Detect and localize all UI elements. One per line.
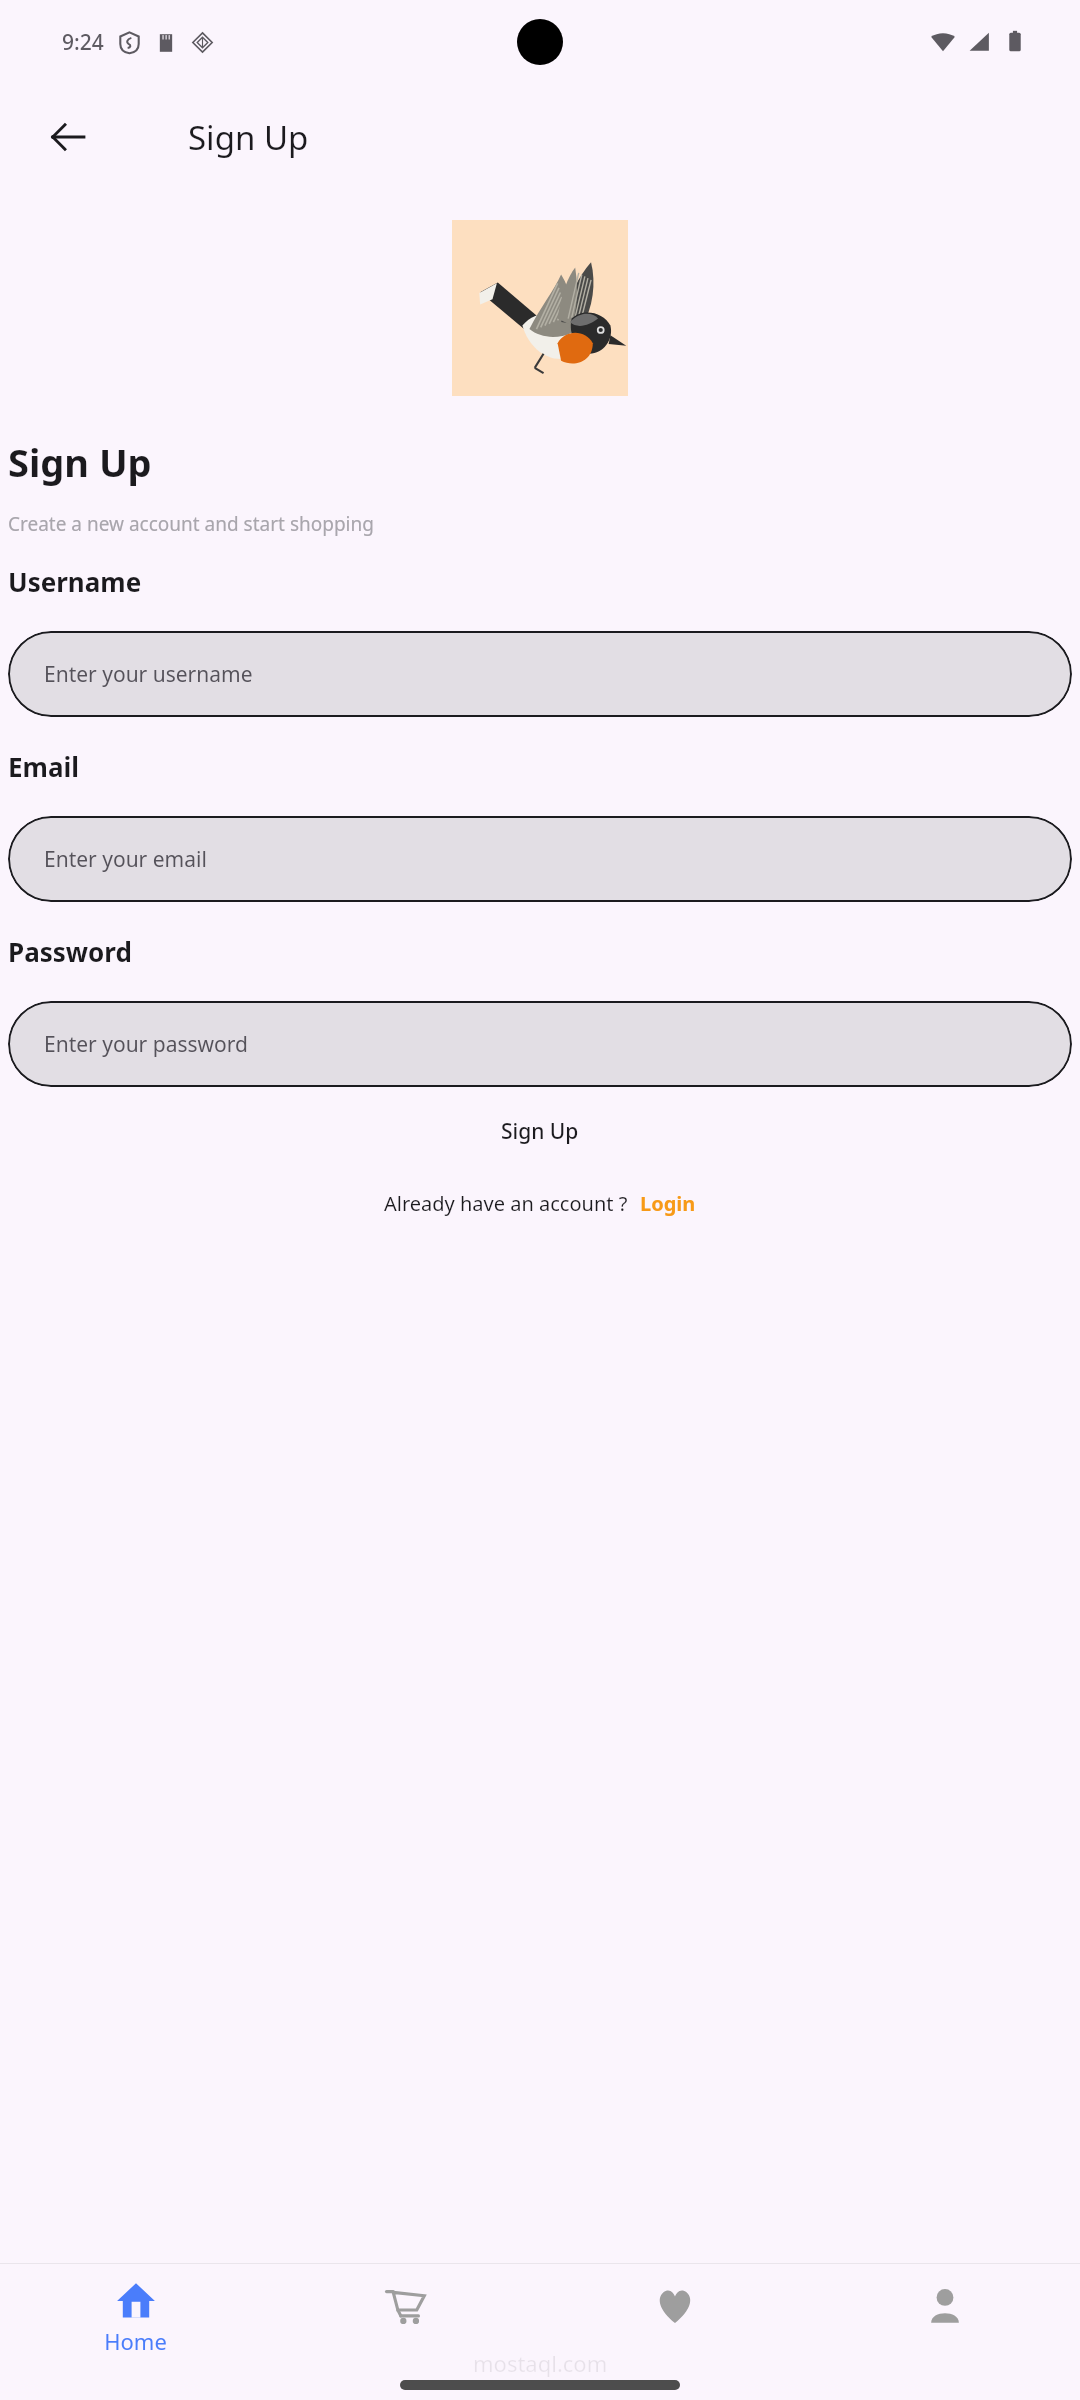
button[interactable]: Profile <box>810 2264 1080 2400</box>
button[interactable]: Home <box>0 2264 270 2400</box>
staticText: Create a new account and start shopping <box>8 511 374 537</box>
button[interactable]: Back <box>32 101 104 173</box>
staticText: Already have an account ? <box>384 1190 628 1217</box>
staticText: Sign Up <box>501 1117 579 1146</box>
staticText: Enter your email <box>44 845 207 874</box>
button[interactable]: Favorites <box>540 2264 810 2400</box>
staticText: Sign Up <box>188 115 309 160</box>
staticText: 9:24 <box>62 28 104 57</box>
button[interactable]: Enter your username <box>8 631 1072 717</box>
staticText: Sign Up <box>8 436 152 488</box>
staticText: mostaql.com <box>473 2348 608 2378</box>
staticText: Login <box>640 1190 696 1217</box>
button[interactable]: Sign Up <box>0 1117 1080 1146</box>
staticText: Enter your username <box>44 660 253 689</box>
staticText: Username <box>8 564 142 599</box>
button[interactable]: Login <box>640 1190 696 1217</box>
staticText: Home <box>104 2326 167 2356</box>
button[interactable]: Enter your email <box>8 816 1072 902</box>
button[interactable]: Cart <box>270 2264 540 2400</box>
button[interactable]: Enter your password <box>8 1001 1072 1087</box>
staticText: Enter your password <box>44 1030 248 1059</box>
staticText: Password <box>8 934 132 969</box>
staticText: Email <box>8 749 80 784</box>
